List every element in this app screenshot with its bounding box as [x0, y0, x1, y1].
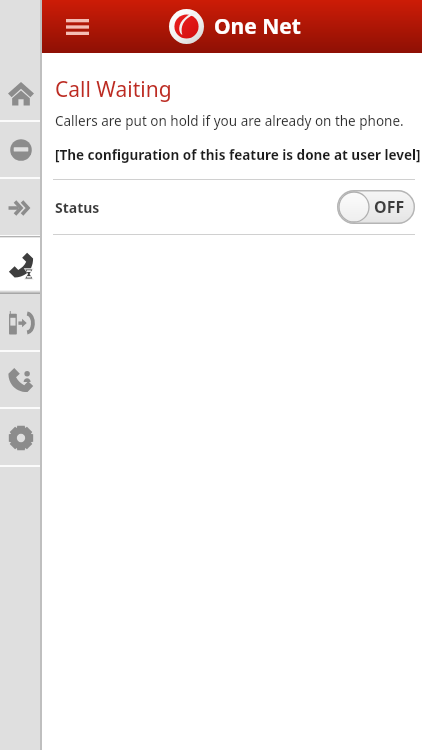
staticText: Status — [55, 198, 100, 217]
button[interactable]: Menu — [60, 10, 94, 44]
button[interactable]: Settings — [0, 409, 42, 467]
button[interactable]: Call waiting — [0, 236, 42, 294]
staticText: Call Waiting — [55, 75, 172, 104]
button[interactable]: Do not disturb — [0, 121, 42, 179]
button[interactable]: Status — [42, 180, 422, 234]
staticText: OFF — [374, 196, 405, 218]
staticText: Callers are put on hold if you are alrea… — [55, 112, 404, 130]
button[interactable]: Call transfer — [0, 294, 42, 352]
button[interactable]: Contacts — [0, 351, 42, 409]
button[interactable]: Status off — [337, 190, 415, 224]
staticText: One Net — [214, 12, 301, 41]
button[interactable]: Home — [0, 64, 42, 122]
staticText: [The configuration of this feature is do… — [55, 146, 421, 164]
button[interactable]: Call forwarding — [0, 179, 42, 237]
